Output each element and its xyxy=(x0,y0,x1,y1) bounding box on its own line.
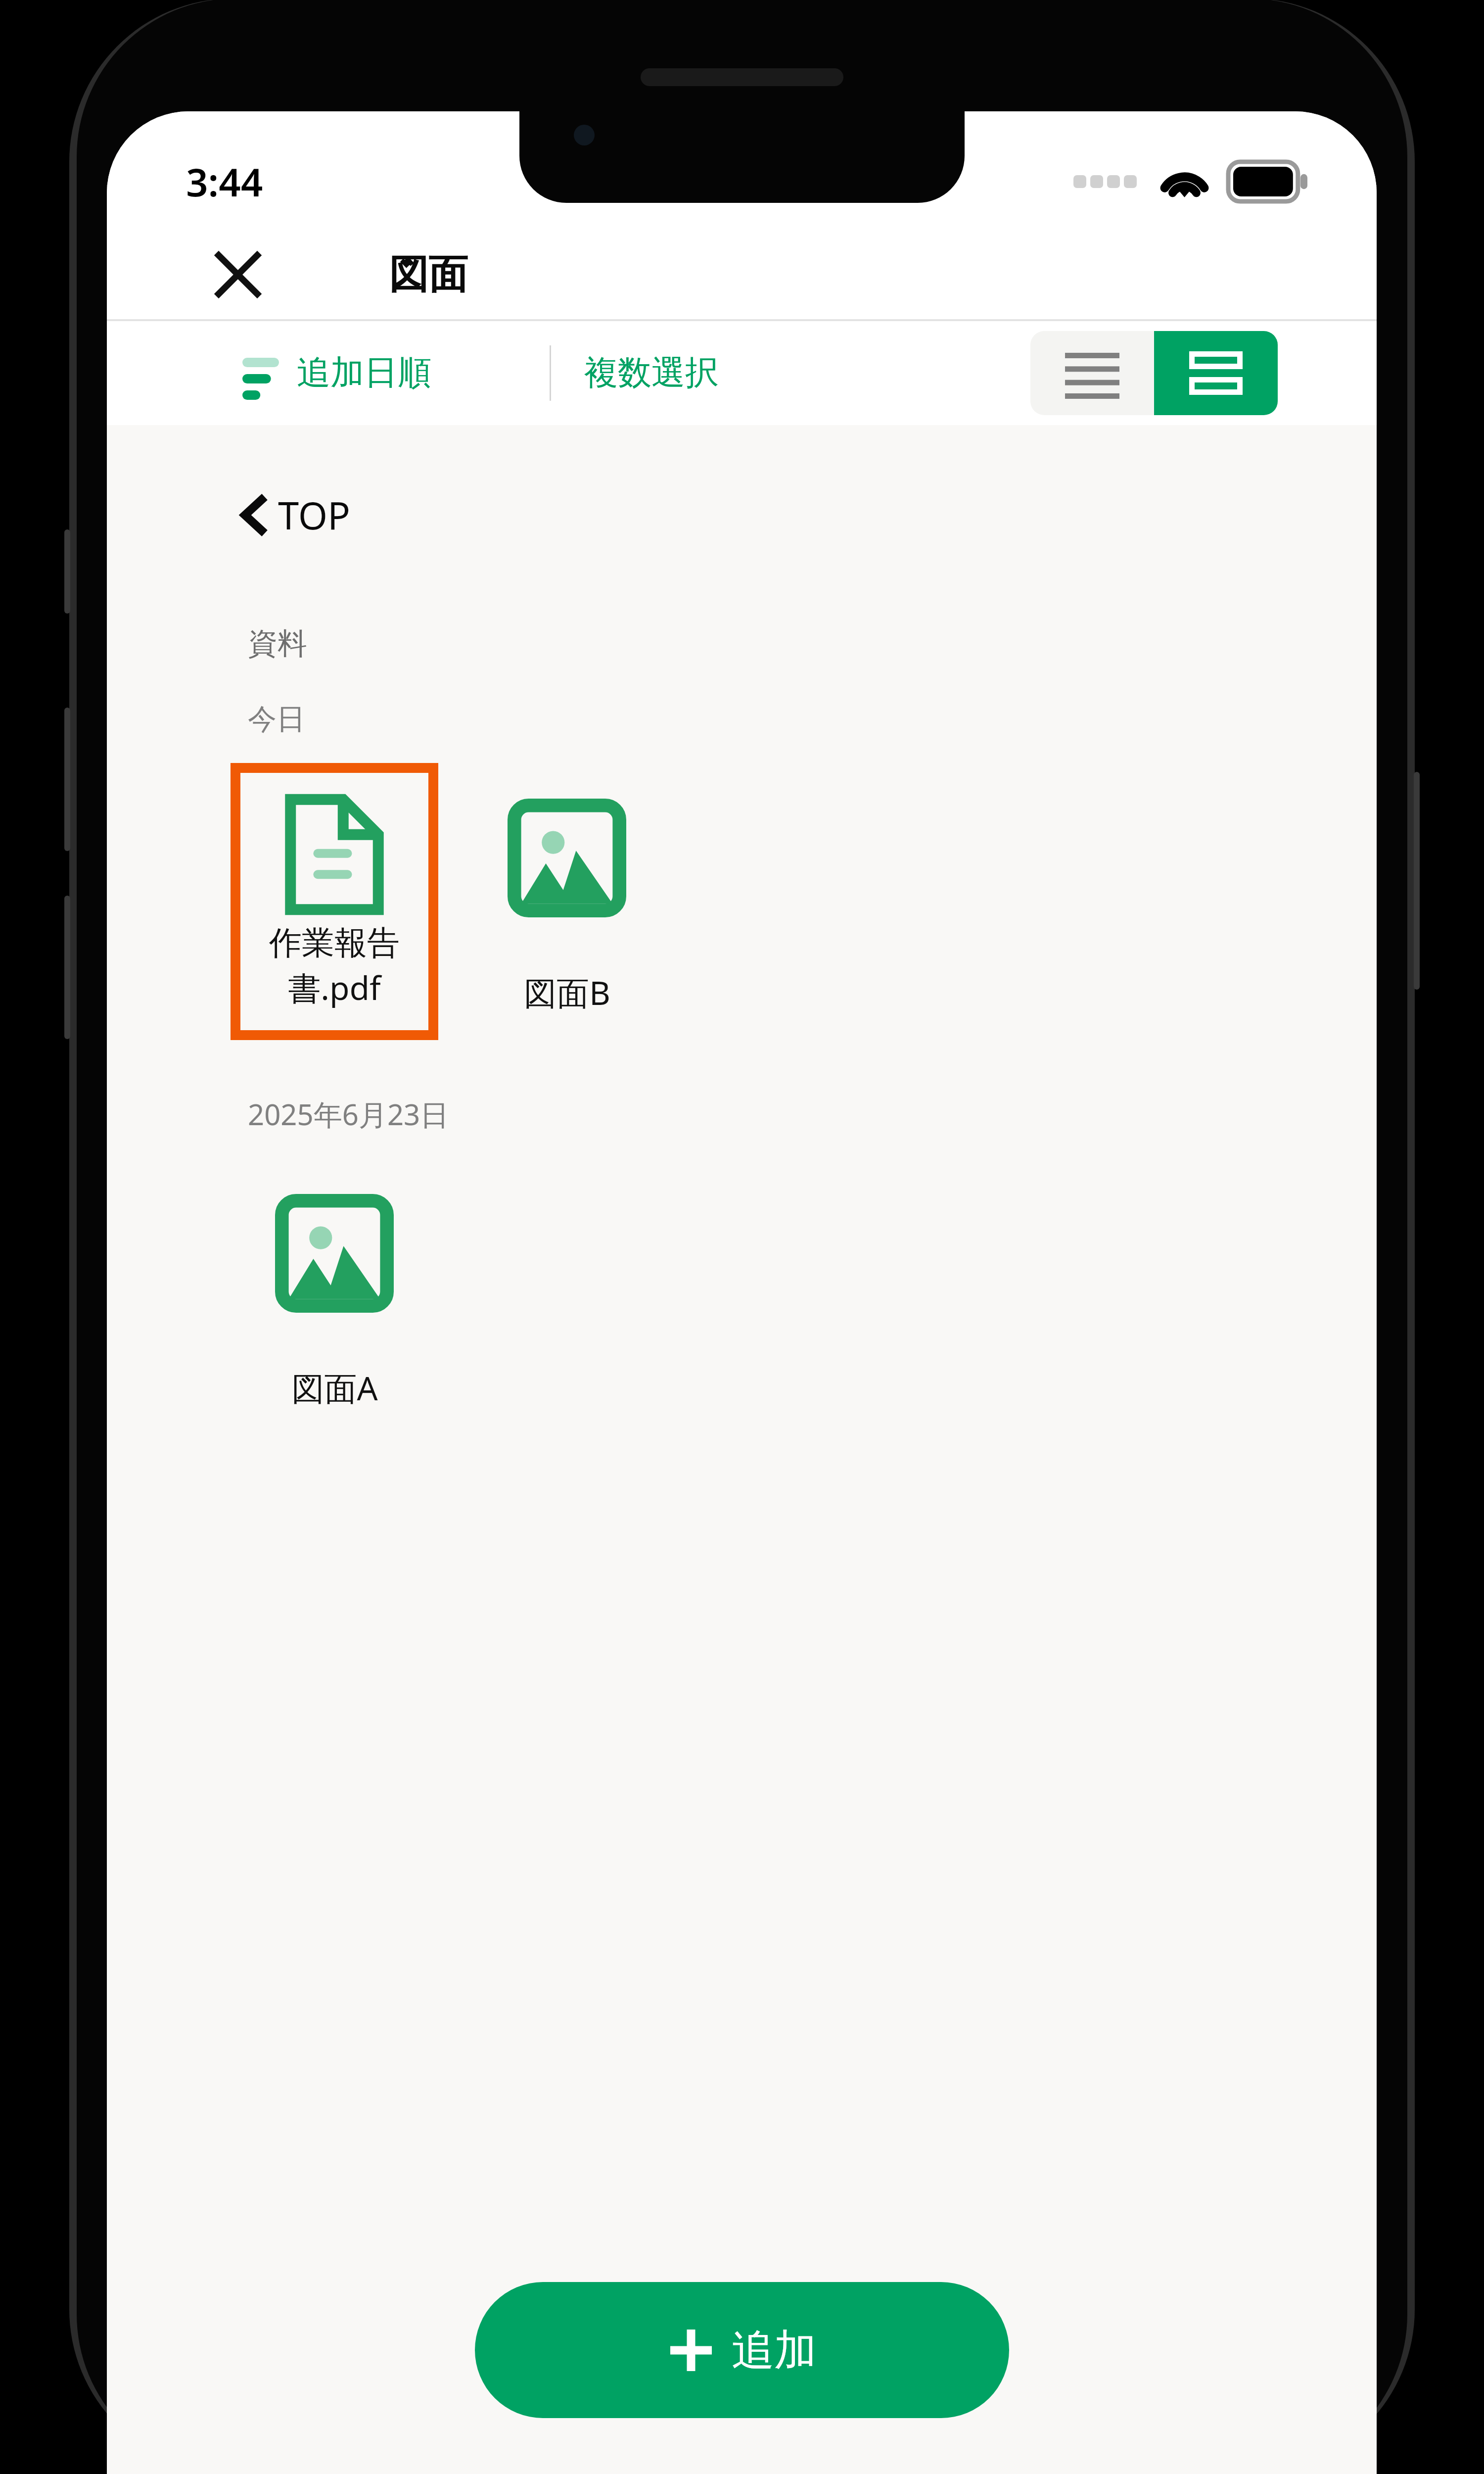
staticText: 今日 xyxy=(248,701,305,737)
button[interactable]: カード表示 xyxy=(1154,331,1278,415)
button[interactable]: 図面B xyxy=(463,763,671,1040)
button[interactable]: 作業報告書.pdf xyxy=(231,763,438,1040)
staticText: 追加 xyxy=(732,2324,817,2377)
staticText: 2025年6月23日 xyxy=(248,1094,449,1134)
button[interactable]: 複数選択 xyxy=(569,342,734,404)
staticText: TOP xyxy=(278,489,351,541)
staticText: 資料 xyxy=(248,625,307,663)
button[interactable]: リスト表示 xyxy=(1030,331,1154,415)
button[interactable]: 図面A xyxy=(231,1158,438,1435)
staticText: 図面B xyxy=(524,970,610,1014)
button[interactable]: 追加 xyxy=(475,2282,1009,2418)
staticText: 複数選択 xyxy=(584,352,719,394)
staticText: 図面 xyxy=(389,250,468,300)
button[interactable]: 追加日順 xyxy=(231,343,443,403)
staticText: 3:44 xyxy=(186,155,263,208)
staticText: 図面A xyxy=(291,1365,378,1410)
staticText: 作業報告書.pdf xyxy=(235,922,433,1009)
button[interactable]: TOP xyxy=(231,479,364,551)
staticText: 追加日順 xyxy=(297,352,431,394)
button[interactable]: 閉じる xyxy=(201,238,275,312)
